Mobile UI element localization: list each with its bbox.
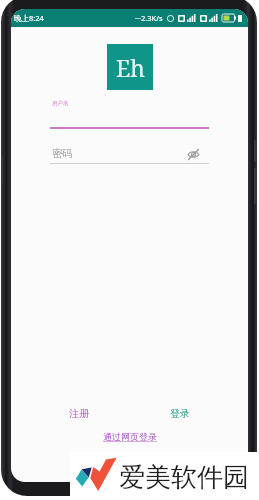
button[interactable]: Show password	[185, 146, 201, 162]
button[interactable]: 登录	[168, 405, 192, 422]
staticText: 注册	[69, 407, 89, 420]
staticText: 用户名	[52, 100, 69, 107]
staticText: 爱美软件园	[119, 461, 249, 494]
button[interactable]: 注册	[67, 405, 91, 422]
button[interactable]: 通过网页登录	[101, 429, 159, 444]
staticText: 密码	[52, 147, 72, 160]
staticText: Eh	[116, 52, 145, 83]
staticText: 晚上8:24	[14, 13, 44, 23]
staticText: 通过网页登录	[103, 431, 157, 442]
staticText: 登录	[170, 407, 190, 420]
staticText: ···2.3K/s	[135, 13, 163, 23]
